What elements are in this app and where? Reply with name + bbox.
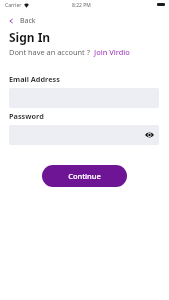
button[interactable]: Join Virdio bbox=[94, 47, 130, 57]
staticText: Carrier bbox=[5, 2, 22, 9]
staticText: Continue bbox=[68, 171, 101, 181]
staticText: Password bbox=[9, 111, 44, 121]
staticText: Dont have an account ? bbox=[9, 47, 94, 57]
staticText: 8:22 PM bbox=[72, 2, 91, 9]
staticText: Email Address bbox=[9, 74, 60, 84]
button[interactable]: Back bbox=[0, 14, 42, 27]
button[interactable]: Show password bbox=[9, 125, 159, 145]
staticText: Back bbox=[20, 16, 36, 26]
button[interactable]: Continue bbox=[42, 165, 127, 187]
staticText: Sign In bbox=[9, 29, 51, 45]
button[interactable]: Show password bbox=[144, 129, 155, 140]
